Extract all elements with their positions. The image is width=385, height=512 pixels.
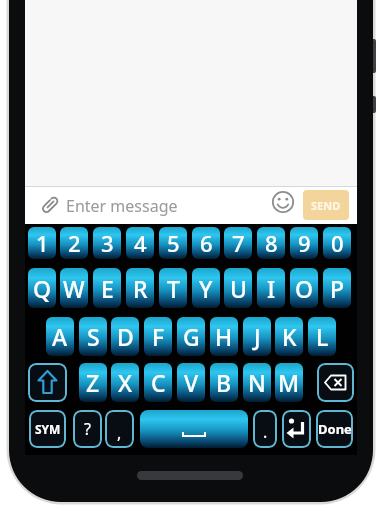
button[interactable]: C xyxy=(144,363,172,402)
button[interactable]: H xyxy=(210,317,238,356)
staticText: . xyxy=(263,421,268,443)
staticText: 0 xyxy=(331,228,344,258)
button[interactable]: T xyxy=(159,268,187,308)
button[interactable]: N xyxy=(243,363,271,402)
staticText: 5 xyxy=(167,228,180,258)
staticText: Enter message xyxy=(66,195,178,217)
button[interactable]: , xyxy=(105,410,134,448)
button[interactable]: F xyxy=(144,317,172,356)
staticText: R xyxy=(133,273,148,304)
staticText: D xyxy=(117,321,134,352)
button[interactable]: 1 xyxy=(28,227,56,259)
staticText: Q xyxy=(33,273,52,304)
staticText: , xyxy=(117,422,122,444)
button[interactable]: 3 xyxy=(93,227,121,259)
staticText: W xyxy=(63,273,85,304)
button[interactable] xyxy=(282,410,311,448)
button[interactable]: L xyxy=(308,317,336,356)
button[interactable]: 7 xyxy=(224,227,252,259)
button[interactable]: W xyxy=(60,268,88,308)
button[interactable]: E xyxy=(93,268,121,308)
button[interactable]: 8 xyxy=(257,227,285,259)
button[interactable]: 9 xyxy=(290,227,318,259)
staticText: 3 xyxy=(101,228,114,258)
button[interactable]: . xyxy=(253,410,277,448)
button[interactable]: 6 xyxy=(192,227,220,259)
staticText: Done xyxy=(318,420,352,438)
button[interactable]: 5 xyxy=(159,227,187,259)
staticText: I xyxy=(267,273,276,304)
staticText: A xyxy=(52,321,68,352)
staticText: F xyxy=(152,321,165,352)
staticText: ? xyxy=(84,418,91,440)
staticText: L xyxy=(316,321,329,352)
staticText: SYM xyxy=(35,421,61,437)
staticText: J xyxy=(254,321,261,352)
staticText: V xyxy=(184,367,199,398)
staticText: 4 xyxy=(134,228,147,258)
staticText: X xyxy=(118,367,133,398)
staticText: Y xyxy=(199,273,213,304)
button[interactable]: J xyxy=(243,317,271,356)
button[interactable] xyxy=(317,363,354,402)
button[interactable]: 4 xyxy=(126,227,154,259)
staticText: G xyxy=(183,321,200,352)
button[interactable]: S xyxy=(79,317,107,356)
staticText: O xyxy=(295,273,314,304)
staticText: K xyxy=(282,321,297,352)
staticText: 6 xyxy=(200,228,213,258)
staticText: N xyxy=(248,367,266,398)
staticText: 1 xyxy=(36,228,49,258)
button[interactable] xyxy=(140,410,248,448)
button[interactable]: U xyxy=(224,268,252,308)
button[interactable]: B xyxy=(210,363,238,402)
button[interactable]: Enter message xyxy=(25,187,357,224)
button[interactable]: Q xyxy=(28,268,56,308)
staticText: Z xyxy=(86,367,100,398)
staticText: 7 xyxy=(232,228,245,258)
staticText: 8 xyxy=(265,228,278,258)
staticText: 9 xyxy=(298,228,311,258)
staticText: T xyxy=(167,273,180,304)
button[interactable]: Y xyxy=(192,268,220,308)
button[interactable]: A xyxy=(46,317,74,356)
button[interactable]: M xyxy=(275,363,303,402)
button[interactable]: R xyxy=(126,268,154,308)
staticText: M xyxy=(278,367,300,398)
button[interactable] xyxy=(28,363,67,402)
button[interactable]: SEND xyxy=(303,190,349,220)
button[interactable]: D xyxy=(111,317,139,356)
staticText: SEND xyxy=(311,198,341,213)
button[interactable]: Z xyxy=(79,363,107,402)
button[interactable]: SYM xyxy=(29,410,66,448)
staticText: B xyxy=(216,367,232,398)
button[interactable]: P xyxy=(323,268,351,308)
button[interactable]: G xyxy=(177,317,205,356)
button[interactable]: 2 xyxy=(60,227,88,259)
button[interactable]: V xyxy=(177,363,205,402)
button[interactable]: K xyxy=(275,317,303,356)
staticText: C xyxy=(151,367,166,398)
button[interactable]: 0 xyxy=(323,227,351,259)
staticText: U xyxy=(230,273,247,304)
staticText: 2 xyxy=(68,228,81,258)
staticText: H xyxy=(215,321,233,352)
staticText: S xyxy=(87,321,100,352)
staticText: E xyxy=(101,273,114,304)
button[interactable]: ? xyxy=(73,410,102,448)
button[interactable]: Done xyxy=(316,410,353,448)
button[interactable]: I xyxy=(257,268,285,308)
staticText: P xyxy=(330,273,345,304)
button[interactable]: O xyxy=(290,268,318,308)
button[interactable]: X xyxy=(111,363,139,402)
